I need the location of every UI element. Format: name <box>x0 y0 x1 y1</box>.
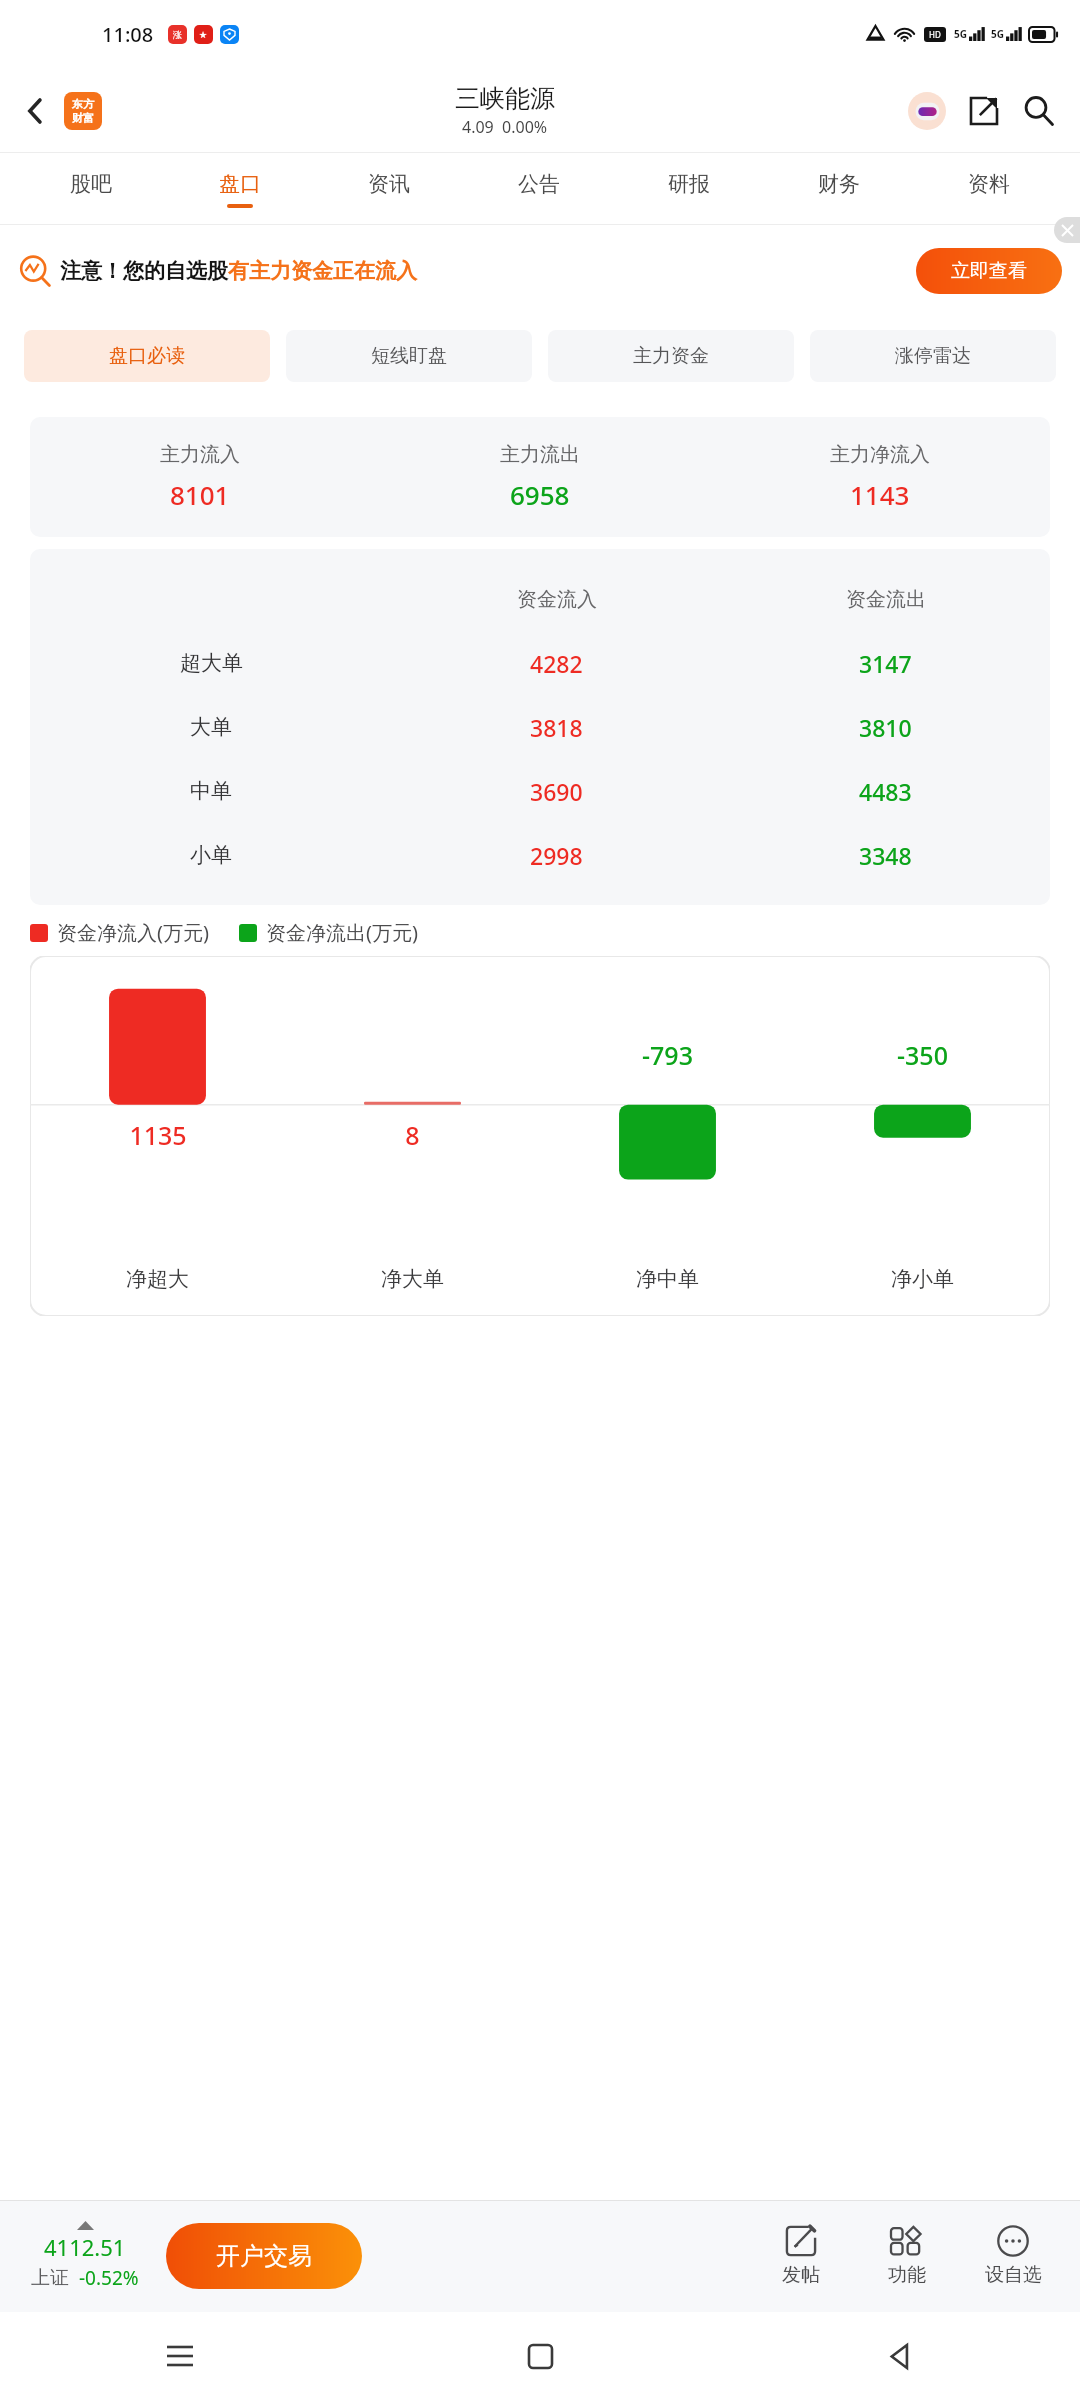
staticText: 3690 <box>530 776 583 807</box>
staticText: 资金净流入(万元) <box>57 919 209 946</box>
staticText: 三峡能源 <box>455 83 555 114</box>
staticText: 主力流出 <box>500 442 580 467</box>
staticText: -793 <box>642 1038 693 1072</box>
staticText: 净超大 <box>126 1266 189 1292</box>
staticText: 5G <box>991 27 1004 41</box>
staticText: 主力资金 <box>633 344 709 368</box>
button[interactable]: 短线盯盘 <box>286 330 532 382</box>
staticText: 涨 <box>173 29 182 40</box>
staticText: 6958 <box>510 477 570 512</box>
staticText: 1143 <box>850 477 910 512</box>
staticText: 3147 <box>859 648 912 679</box>
staticText: 大单 <box>190 714 232 740</box>
staticText: 8101 <box>170 477 230 512</box>
button[interactable]: 公告 <box>464 153 614 225</box>
button[interactable]: Share <box>964 91 1004 131</box>
button[interactable]: AI assistant <box>908 92 946 130</box>
staticText: 财富 <box>72 111 94 125</box>
button[interactable]: 设自选 <box>960 2200 1066 2312</box>
staticText: 涨停雷达 <box>895 344 971 368</box>
staticText: ★ <box>199 30 208 40</box>
button[interactable]: 股吧 <box>16 153 165 225</box>
staticText: 4282 <box>530 648 583 679</box>
staticText: 净小单 <box>891 1266 954 1292</box>
staticText: -0.52% <box>79 2265 139 2291</box>
button[interactable]: 资讯 <box>314 153 464 225</box>
staticText: 财务 <box>818 171 860 197</box>
staticText: 资金流出 <box>846 587 926 612</box>
staticText: 3810 <box>859 712 912 743</box>
button[interactable]: 4112.51 <box>10 2221 160 2291</box>
staticText: 立即查看 <box>951 259 1027 283</box>
button[interactable]: Recent apps <box>0 2312 360 2400</box>
staticText: 净中单 <box>636 1266 699 1292</box>
button[interactable]: 盘口必读 <box>24 330 270 382</box>
button[interactable]: Search <box>1018 90 1060 132</box>
staticText: 公告 <box>518 171 560 197</box>
button[interactable]: 开户交易 <box>166 2223 362 2289</box>
button[interactable]: 中单 <box>30 759 1050 823</box>
staticText: 主力净流入 <box>830 442 930 467</box>
staticText: 8 <box>405 1118 420 1152</box>
button[interactable]: 立即查看 <box>916 248 1062 294</box>
staticText: 3348 <box>859 840 912 871</box>
staticText: 4483 <box>859 776 912 807</box>
staticText: 盘口必读 <box>109 344 185 368</box>
button[interactable]: 小单 <box>30 823 1050 887</box>
staticText: 设自选 <box>985 2263 1042 2287</box>
button[interactable]: 涨停雷达 <box>810 330 1056 382</box>
staticText: 净大单 <box>381 1266 444 1292</box>
staticText: 11:08 <box>102 21 154 48</box>
button[interactable]: Home <box>360 2312 720 2400</box>
staticText: 盘口 <box>219 171 261 197</box>
staticText: 4112.51 <box>44 2232 126 2262</box>
button[interactable]: 主力资金 <box>548 330 794 382</box>
staticText: 发帖 <box>782 2263 820 2287</box>
staticText: 中单 <box>190 778 232 804</box>
staticText: 研报 <box>668 171 710 197</box>
staticText: 资金净流出(万元) <box>266 919 418 946</box>
staticText: 5G <box>954 27 967 41</box>
button[interactable]: Back <box>720 2312 1080 2400</box>
staticText: 开户交易 <box>216 2241 312 2271</box>
staticText: 资料 <box>968 171 1010 197</box>
staticText: 超大单 <box>180 650 243 676</box>
button[interactable]: 大单 <box>30 695 1050 759</box>
button[interactable]: 盘口 <box>165 153 314 225</box>
staticText: 有主力资金正在流入 <box>228 258 417 284</box>
staticText: 资讯 <box>368 171 410 197</box>
staticText: 东方 <box>72 97 94 111</box>
button[interactable]: 发帖 <box>748 2200 854 2312</box>
button[interactable]: Close banner <box>1054 217 1080 243</box>
staticText: 短线盯盘 <box>371 344 447 368</box>
staticText: 小单 <box>190 842 232 868</box>
staticText: 2998 <box>530 840 583 871</box>
staticText: 3818 <box>530 712 583 743</box>
button[interactable]: 功能 <box>854 2200 960 2312</box>
button[interactable]: 东方财富 <box>64 92 102 130</box>
staticText: 注意！您的自选股 <box>60 258 228 284</box>
staticText: HD <box>929 29 941 40</box>
staticText: -350 <box>897 1038 948 1072</box>
button[interactable]: 研报 <box>614 153 764 225</box>
staticText: 上证 <box>31 2266 69 2290</box>
staticText: 4.09 0.00% <box>462 116 548 138</box>
button[interactable]: 资料 <box>914 153 1064 225</box>
button[interactable]: 超大单 <box>30 631 1050 695</box>
staticText: 1135 <box>129 1118 187 1152</box>
button[interactable]: 财务 <box>764 153 914 225</box>
staticText: 资金流入 <box>517 587 597 612</box>
staticText: 主力流入 <box>160 442 240 467</box>
staticText: 功能 <box>888 2263 926 2287</box>
staticText: 股吧 <box>70 171 112 197</box>
button[interactable]: Back <box>14 89 58 133</box>
